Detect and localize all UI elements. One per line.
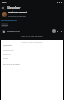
staticText: Answers from employees bbox=[21, 41, 43, 43]
staticText: Question bbox=[3, 44, 13, 47]
staticText: Gretchen Bryant bbox=[8, 11, 27, 14]
staticText: 9:41 bbox=[2, 1, 7, 4]
button[interactable]: See more answers bbox=[3, 63, 21, 66]
staticText: Software Engineer bbox=[8, 15, 27, 18]
staticText: Follow bbox=[2, 24, 8, 27]
button[interactable]: Follow bbox=[1, 23, 8, 27]
staticText: amet bbox=[3, 57, 8, 60]
button[interactable]: Back bbox=[0, 5, 5, 10]
staticText: Sign in to see answers bbox=[21, 35, 43, 38]
staticText: Glassdoor bbox=[7, 6, 21, 10]
button[interactable]: #engineering bbox=[1, 18, 17, 21]
staticText: dolor sit bbox=[3, 53, 11, 56]
button[interactable]: Site icon bbox=[2, 30, 5, 33]
staticText: supadu.com bbox=[7, 30, 20, 33]
staticText: Lorem ipsu bbox=[3, 49, 14, 52]
